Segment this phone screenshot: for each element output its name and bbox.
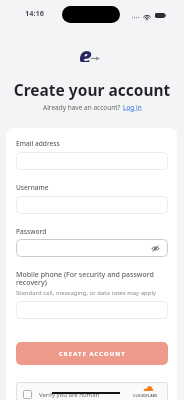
other: Show password: [151, 244, 160, 253]
staticText: e: [79, 40, 92, 62]
staticText: Verify you are human: [39, 391, 100, 399]
staticText: Password: [16, 227, 47, 236]
staticText: CREATE ACCOUNT: [59, 350, 126, 358]
staticText: Create your account: [0, 79, 184, 100]
button[interactable]: Log in: [123, 103, 142, 112]
staticText: 14:16: [25, 8, 44, 18]
button[interactable]: [16, 152, 168, 170]
staticText: CLOUDFLARE: [133, 393, 158, 398]
button[interactable]: [16, 301, 168, 319]
button[interactable]: CREATE ACCOUNT: [16, 342, 168, 365]
button[interactable]: Show password: [16, 239, 168, 257]
staticText: Mobile phone (For security and password …: [16, 270, 168, 287]
button[interactable]: Verify you are human: [23, 390, 32, 399]
staticText: Already have an account?: [43, 103, 123, 112]
staticText: Username: [16, 183, 49, 192]
staticText: Standard call, messaging, or data rates …: [16, 289, 157, 297]
staticText: Email address: [16, 139, 60, 148]
button[interactable]: [16, 196, 168, 214]
